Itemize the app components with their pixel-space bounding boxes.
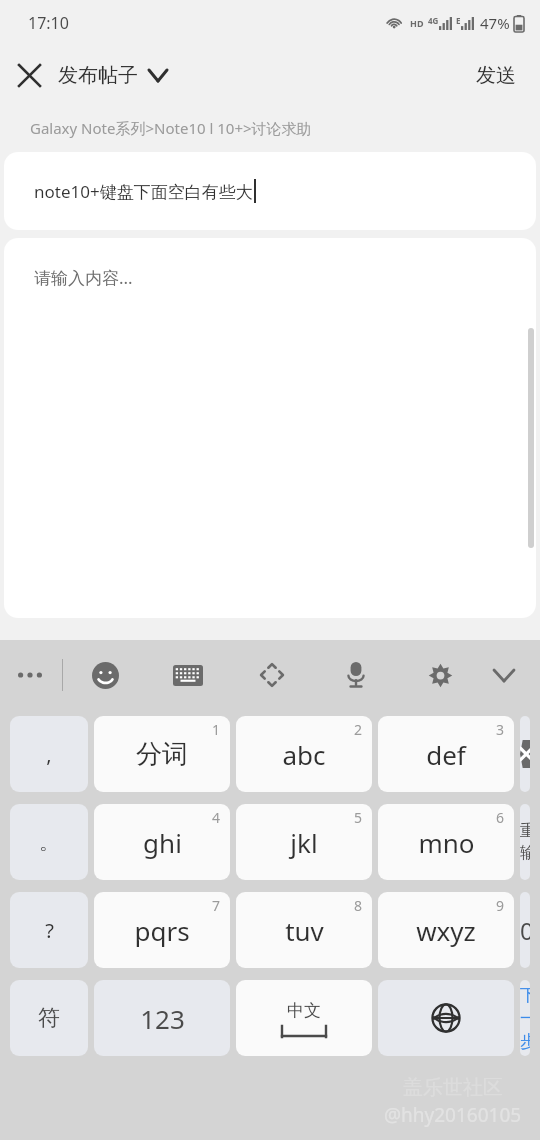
staticText: 1 <box>212 720 221 739</box>
staticText: 2 <box>354 720 363 739</box>
staticText: ghi <box>143 825 182 860</box>
button[interactable]: mno <box>378 804 514 880</box>
staticText: 重输 <box>520 821 530 863</box>
button[interactable]: 。 <box>10 804 88 880</box>
staticText: note10+键盘下面空白有些大 <box>34 180 253 203</box>
staticText: Galaxy Note系列>Note10 l 10+>讨论求助 <box>30 118 312 138</box>
staticText: , <box>46 741 52 768</box>
staticText: tuv <box>285 913 324 948</box>
button[interactable]: pqrs <box>94 892 230 968</box>
staticText: HD <box>410 17 424 29</box>
button[interactable]: jkl <box>236 804 372 880</box>
staticText: 9 <box>496 896 505 915</box>
button[interactable]: 符 <box>10 980 88 1056</box>
staticText: 17:10 <box>28 12 69 34</box>
staticText: pqrs <box>134 913 190 948</box>
staticText: 6 <box>496 808 505 827</box>
staticText: 7 <box>212 896 221 915</box>
button[interactable]: note10+键盘下面空白有些大 <box>4 152 536 230</box>
staticText: wxyz <box>416 913 476 948</box>
staticText: 47% <box>480 13 510 33</box>
staticText: def <box>426 737 466 772</box>
staticText: ? <box>45 917 54 944</box>
staticText: jkl <box>290 825 318 860</box>
staticText: 。 <box>39 830 59 855</box>
button[interactable]: Move cursor <box>248 651 296 699</box>
button[interactable]: wxyz <box>378 892 514 968</box>
button[interactable]: 发送 <box>452 53 540 98</box>
button[interactable]: Keyboard layout <box>164 651 212 699</box>
staticText: @hhy20160105 <box>384 1102 522 1128</box>
button[interactable]: 中文 <box>236 980 372 1056</box>
button[interactable]: More <box>10 655 50 695</box>
staticText: 中文 <box>287 1000 321 1021</box>
staticText: 发送 <box>476 63 516 88</box>
button[interactable]: 分词 <box>94 716 230 792</box>
button[interactable]: Hide keyboard <box>480 651 528 699</box>
button[interactable]: 123 <box>94 980 230 1056</box>
button[interactable]: Settings <box>416 651 464 699</box>
staticText: 3 <box>496 720 505 739</box>
staticText: 下一步 <box>520 985 530 1052</box>
staticText: abc <box>282 737 326 772</box>
staticText: 发布帖子 <box>58 63 138 88</box>
button[interactable]: 发布帖子 <box>58 63 168 88</box>
button[interactable]: def <box>378 716 514 792</box>
button[interactable]: Voice input <box>332 651 380 699</box>
staticText: 4G <box>428 15 439 26</box>
staticText: 5 <box>354 808 363 827</box>
button[interactable]: Close <box>0 46 58 104</box>
button[interactable]: 下一步 <box>520 980 530 1056</box>
button[interactable]: ? <box>10 892 88 968</box>
button[interactable]: , <box>10 716 88 792</box>
staticText: 符 <box>38 1004 60 1032</box>
staticText: 123 <box>140 1001 185 1036</box>
button[interactable]: Change language <box>378 980 514 1056</box>
button[interactable]: ghi <box>94 804 230 880</box>
button[interactable]: Emoji <box>81 651 129 699</box>
staticText: mno <box>418 825 475 860</box>
button[interactable]: abc <box>236 716 372 792</box>
staticText: 4 <box>212 808 221 827</box>
staticText: 请输入内容... <box>34 266 133 289</box>
button[interactable]: tuv <box>236 892 372 968</box>
button[interactable]: 0 <box>520 892 530 968</box>
staticText: 8 <box>354 896 363 915</box>
button[interactable]: Backspace <box>520 716 530 792</box>
staticText: E <box>456 15 461 26</box>
button[interactable]: 请输入内容... <box>4 238 536 618</box>
staticText: 0 <box>520 914 530 947</box>
staticText: 分词 <box>136 738 188 771</box>
button[interactable]: 重输 <box>520 804 530 880</box>
staticText: 盖乐世社区 <box>403 1075 503 1100</box>
